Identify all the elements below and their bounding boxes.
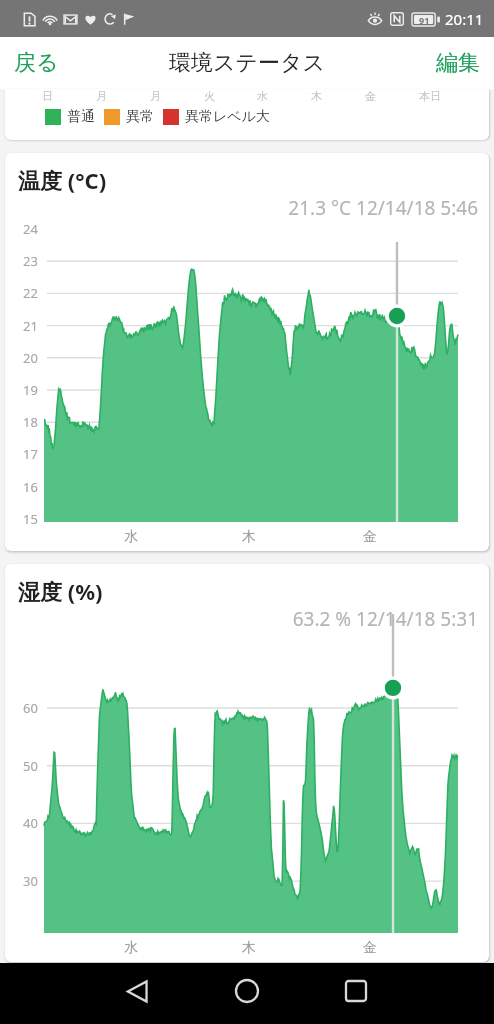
staticText: 20 [23, 349, 38, 367]
staticText: 17 [23, 445, 38, 463]
staticText: 水 [124, 528, 138, 546]
staticText: 23 [23, 252, 38, 270]
staticText: 50 [23, 757, 38, 775]
staticText: 異常レベル大 [185, 108, 270, 126]
button[interactable]: Home [219, 963, 275, 1019]
staticText: 普通 [67, 108, 95, 126]
staticText: 19 [23, 381, 38, 399]
staticText: 20:11 [445, 9, 484, 29]
staticText: 環境ステータス [169, 49, 326, 77]
button[interactable]: 編集 [422, 39, 494, 87]
staticText: 金 [363, 528, 377, 546]
staticText: 木 [311, 89, 322, 103]
staticText: 21.3 °C 12/14/18 5:46 [5, 195, 478, 221]
staticText: 月 [150, 89, 161, 103]
staticText: 水 [124, 939, 138, 957]
button[interactable]: 戻る [0, 39, 73, 87]
staticText: 本日 [419, 89, 441, 103]
staticText: 月 [96, 89, 107, 103]
staticText: 湿度 (%) [18, 576, 103, 606]
staticText: 温度 (°C) [18, 165, 107, 195]
staticText: 金 [365, 89, 376, 103]
staticText: 91 [419, 14, 430, 26]
staticText: 18 [23, 413, 38, 431]
staticText: 水 [257, 89, 268, 103]
button[interactable]: Recents [328, 963, 384, 1019]
staticText: 火 [204, 89, 215, 103]
staticText: 編集 [436, 49, 480, 77]
staticText: 30 [23, 872, 38, 890]
staticText: 24 [23, 220, 38, 238]
staticText: 63.2 % 12/14/18 5:31 [5, 606, 478, 632]
staticText: 異常 [126, 108, 154, 126]
staticText: 16 [23, 478, 38, 496]
staticText: 40 [23, 814, 38, 832]
staticText: 21 [23, 317, 38, 335]
button[interactable]: Back [109, 963, 165, 1019]
staticText: 日 [42, 89, 53, 103]
staticText: 15 [23, 510, 38, 528]
button[interactable]: 日 [5, 89, 489, 140]
staticText: 60 [23, 699, 38, 717]
staticText: 戻る [14, 49, 59, 77]
button[interactable]: 湿度 (%) [5, 564, 489, 962]
staticText: 木 [242, 939, 256, 957]
staticText: 金 [363, 939, 377, 957]
staticText: 木 [242, 528, 256, 546]
staticText: 22 [23, 284, 38, 302]
button[interactable]: 温度 (°C) [5, 153, 489, 551]
